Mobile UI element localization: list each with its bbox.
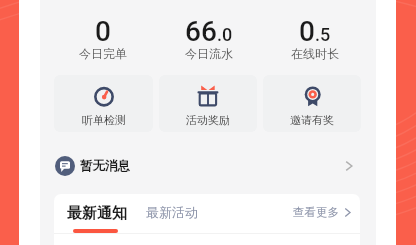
button[interactable]: 66 [156,0,262,75]
staticText: .0 [217,24,233,45]
staticText: 暂无消息 [80,158,130,174]
staticText: 最新活动 [146,204,198,220]
staticText: .5 [315,24,331,45]
button[interactable]: 最新活动 [144,204,200,220]
staticText: 最新通知 [67,204,127,223]
other: 查看消息 [344,161,354,171]
staticText: 今日完单 [79,46,127,61]
staticText: 0 [95,15,111,48]
staticText: 活动奖励 [186,113,230,127]
staticText: 听单检测 [82,113,126,127]
button[interactable]: 最新通知 [54,202,131,221]
staticText: 今日流水 [185,46,233,61]
staticText: 查看更多 [293,205,339,219]
staticText: 邀请有奖 [290,113,334,127]
button[interactable]: 活动奖励 [159,75,257,132]
button[interactable]: 0 [262,0,368,75]
button[interactable]: 暂无消息 [40,132,376,194]
staticText: 在线时长 [291,46,339,61]
button[interactable]: 0 [49,0,156,75]
staticText: 66 [185,15,217,48]
button[interactable]: 查看更多 [293,205,360,219]
button[interactable]: 听单检测 [54,75,153,132]
button[interactable]: 邀请有奖 [263,75,361,132]
staticText: 0 [299,15,315,48]
